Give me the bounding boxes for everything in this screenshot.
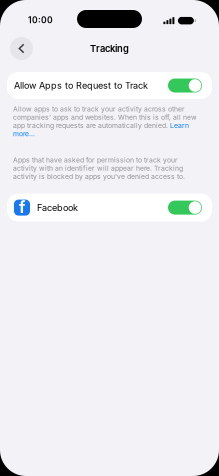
button[interactable]: f	[7, 194, 212, 222]
staticText: activity with an identifier will appear …	[13, 164, 183, 172]
staticText: Tracking	[90, 43, 129, 54]
staticText: activity is blocked by apps you've denie…	[13, 172, 185, 181]
staticText: Allow Apps to Request to Track	[14, 80, 148, 91]
button[interactable]: Allow Apps to Request to Track	[7, 72, 212, 99]
staticText: app tracking requests are automatically …	[13, 121, 170, 130]
staticText: Facebook	[37, 202, 78, 213]
staticText: Apps that have asked for permission to t…	[13, 156, 178, 164]
staticText: companies' apps and websites. When this …	[13, 113, 197, 121]
staticText: 10:00	[28, 15, 53, 25]
staticText: f	[19, 197, 25, 217]
staticText: more…	[13, 130, 35, 138]
button[interactable]: Back	[7, 34, 36, 63]
staticText: Learn	[170, 121, 189, 130]
staticText: Allow apps to ask to track your activity…	[13, 105, 185, 113]
